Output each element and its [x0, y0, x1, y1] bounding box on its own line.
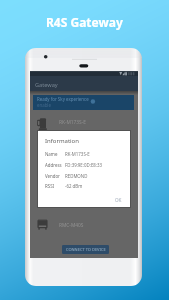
staticText: CONNECT TO DEVICE	[66, 247, 106, 252]
staticText: RK-M173S-E	[59, 119, 86, 126]
button[interactable]: RK-M173S-E	[30, 118, 138, 132]
staticText: RK-M173S-E	[65, 151, 90, 157]
staticText: Gateway	[35, 81, 58, 89]
staticText: OK	[115, 197, 122, 203]
staticText: REDMOND	[65, 173, 88, 179]
staticText: Address	[45, 162, 62, 168]
button[interactable]: CONNECT TO DEVICE	[62, 245, 109, 254]
staticText: Ready for Sky experience	[37, 96, 89, 102]
staticText: RMC-M40S	[59, 222, 84, 229]
staticText: Vendor	[45, 173, 60, 179]
staticText: enable	[37, 102, 51, 108]
button[interactable]: Ready for Sky experience	[33, 95, 134, 110]
staticText: RSSI	[45, 183, 55, 189]
staticText: R4S Gateway	[46, 14, 123, 30]
staticText: Name	[45, 151, 58, 157]
staticText: FD:39:9E:0D:E8:33	[65, 162, 103, 168]
staticText: Information	[45, 137, 79, 145]
button[interactable]: OK	[111, 194, 126, 206]
button[interactable]: RMC-M40S	[30, 218, 138, 232]
staticText: -62 dBm	[65, 183, 83, 189]
